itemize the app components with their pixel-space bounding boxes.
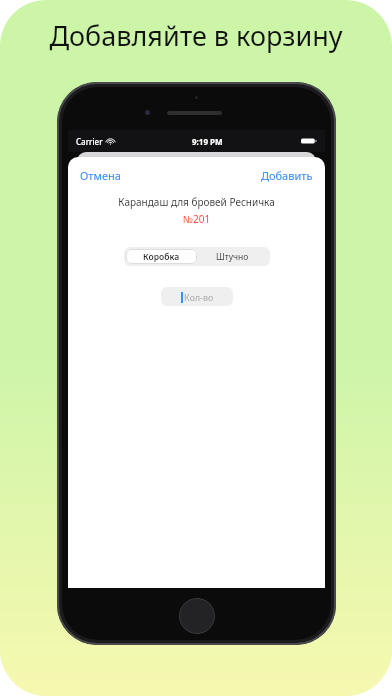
staticText: 9:19 PM xyxy=(192,136,223,147)
staticText: Отмена xyxy=(80,168,121,183)
staticText: Коробка xyxy=(143,251,180,263)
staticText: Добавить xyxy=(261,168,313,183)
staticText: Штучно xyxy=(216,251,249,263)
button[interactable]: Кол-во xyxy=(161,287,233,306)
staticText: №201 xyxy=(68,212,325,226)
button[interactable]: Штучно xyxy=(197,249,268,264)
button[interactable]: Home xyxy=(179,598,215,634)
button[interactable]: Отмена xyxy=(74,165,127,186)
button[interactable]: Коробка xyxy=(126,249,197,264)
staticText: Добавляйте в корзину xyxy=(49,17,343,54)
staticText: Carrier xyxy=(76,136,103,147)
staticText: Кол-во xyxy=(184,291,214,303)
staticText: Карандаш для бровей Ресничка xyxy=(68,195,325,209)
button[interactable]: Добавить xyxy=(255,165,319,186)
